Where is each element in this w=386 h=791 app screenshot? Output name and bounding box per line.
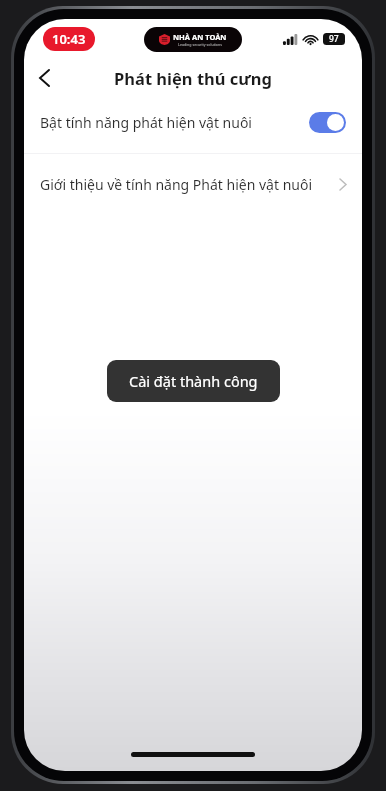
button[interactable]: Bật tính năng phát hiện vật nuôi — [24, 101, 362, 143]
staticText: Phát hiện thú cưng — [114, 67, 272, 89]
staticText: Bật tính năng phát hiện vật nuôi — [40, 113, 252, 132]
staticText: NHÀ AN TOÀN — [173, 32, 227, 42]
other: Pet detection toggle, on — [309, 112, 346, 133]
staticText: Giới thiệu về tính năng Phát hiện vật nu… — [40, 175, 313, 194]
button[interactable]: Giới thiệu về tính năng Phát hiện vật nu… — [24, 164, 362, 204]
button[interactable]: Back — [24, 59, 64, 97]
staticText: 10:43 — [52, 30, 86, 48]
staticText: 97 — [329, 33, 339, 45]
staticText: Leading security solutions — [178, 42, 222, 47]
staticText: Cài đặt thành công — [129, 371, 258, 391]
